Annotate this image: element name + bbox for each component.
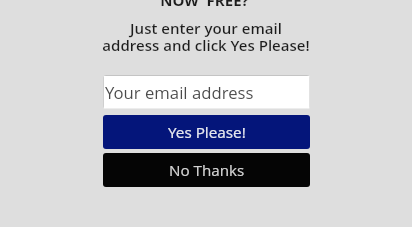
staticText: NOW FREE? xyxy=(160,0,249,10)
staticText: Yes Please! xyxy=(168,122,246,143)
button[interactable]: No Thanks xyxy=(103,153,310,187)
button[interactable]: Your email address xyxy=(103,75,310,109)
staticText: Just enter your email address and click … xyxy=(102,18,310,55)
staticText: No Thanks xyxy=(169,160,245,181)
staticText: Your email address xyxy=(105,81,254,104)
button[interactable]: Yes Please! xyxy=(103,115,310,149)
